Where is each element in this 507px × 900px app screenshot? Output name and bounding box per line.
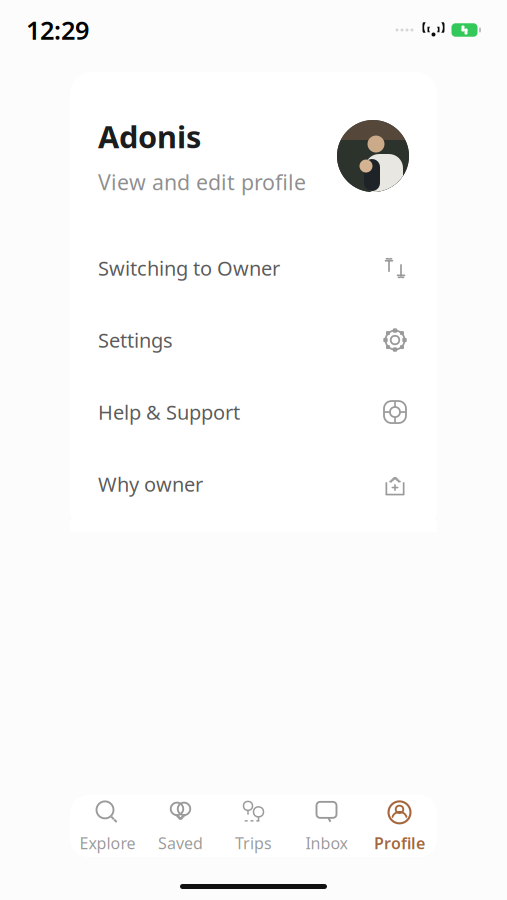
staticText: Switching to Owner	[98, 255, 280, 281]
staticText: Settings	[98, 327, 173, 353]
button[interactable]: Switching to Owner	[70, 232, 437, 304]
button[interactable]: Why owner	[70, 448, 437, 520]
button[interactable]: Trips	[217, 795, 290, 857]
button[interactable]: Adonis	[70, 72, 437, 232]
button[interactable]: Help & Support	[70, 376, 437, 448]
button[interactable]: Profile	[363, 795, 436, 857]
button[interactable]: Saved	[144, 795, 217, 857]
staticText: Saved	[158, 832, 203, 854]
staticText: Inbox	[305, 832, 347, 854]
staticText: Profile	[374, 832, 425, 854]
staticText: Why owner	[98, 471, 203, 497]
button[interactable]: Explore	[71, 795, 144, 857]
staticText: View and edit profile	[98, 168, 306, 196]
button[interactable]: Settings	[70, 304, 437, 376]
staticText: Trips	[235, 832, 272, 854]
button[interactable]: Inbox	[290, 795, 363, 857]
staticText: Help & Support	[98, 399, 240, 425]
staticText: Adonis	[98, 116, 201, 157]
staticText: 12:29	[26, 13, 89, 47]
staticText: Explore	[79, 832, 135, 854]
